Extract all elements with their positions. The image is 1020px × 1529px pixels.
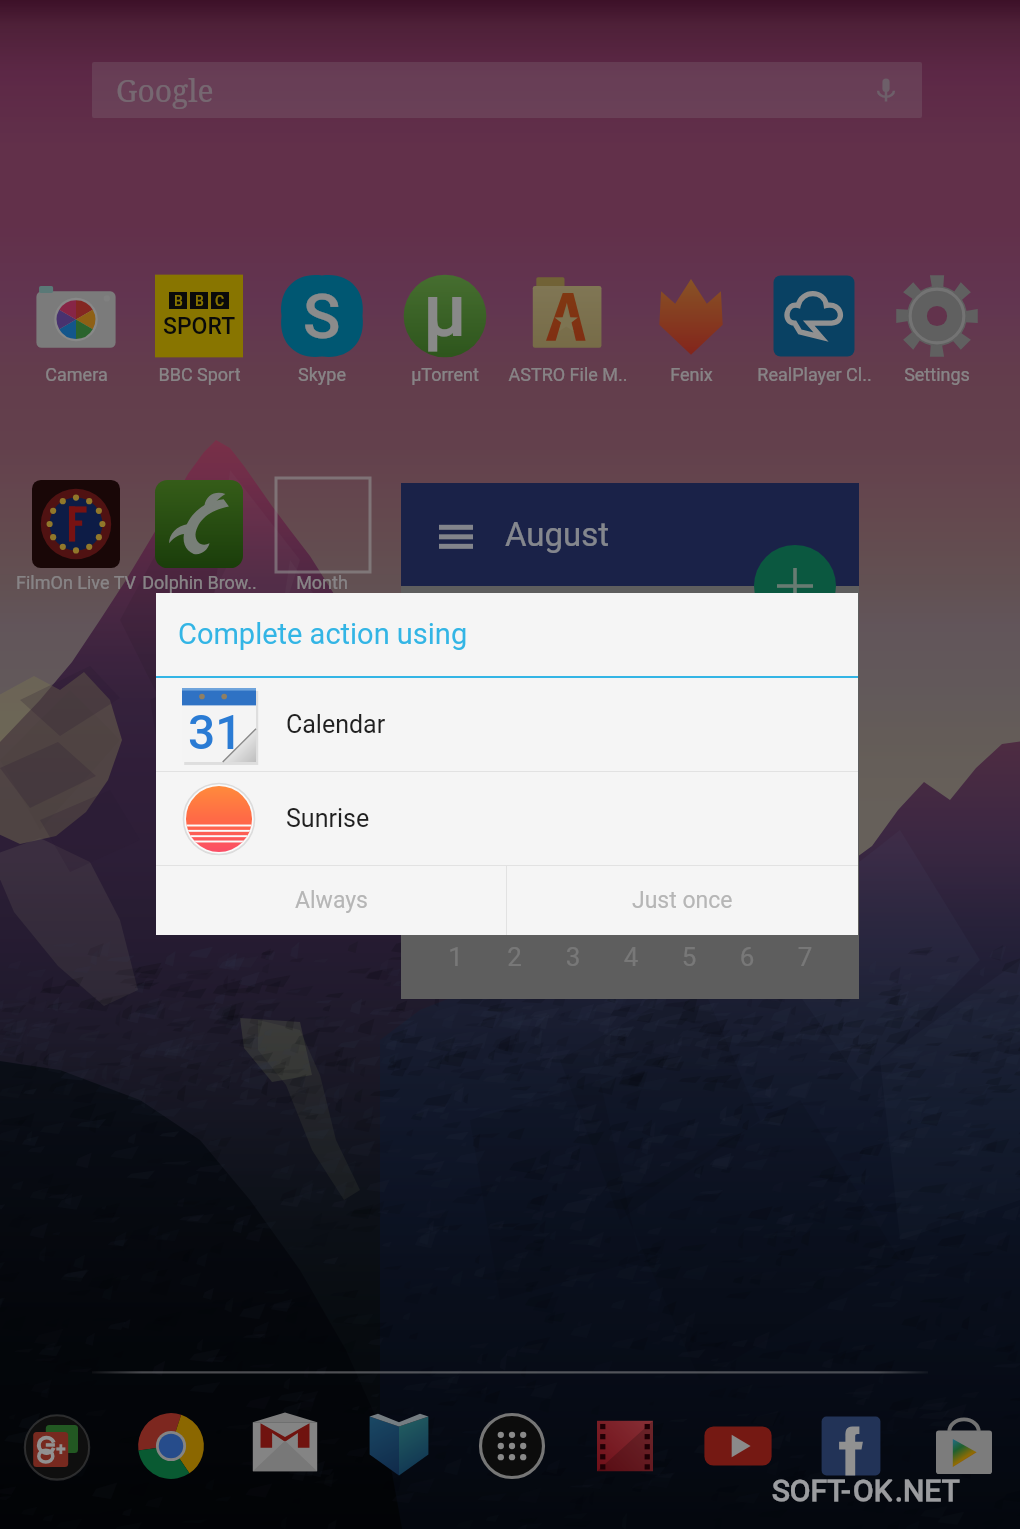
staticText: BBC Sport	[158, 364, 241, 385]
staticText: Skype	[298, 364, 346, 385]
staticText: RealPlayer Cl..	[757, 364, 872, 385]
staticText: 5	[660, 942, 718, 972]
button[interactable]	[4, 474, 150, 596]
staticText: .NET	[895, 1473, 960, 1508]
other: Menu	[439, 518, 473, 552]
staticText: Camera	[45, 364, 108, 385]
staticText: 7	[776, 942, 834, 972]
staticText: Settings	[904, 364, 970, 385]
button[interactable]	[619, 266, 765, 388]
button[interactable]: Play Books	[342, 1398, 455, 1494]
staticText: Google	[116, 70, 214, 111]
staticText: 4	[602, 942, 660, 972]
button[interactable]: YouTube	[681, 1398, 794, 1494]
staticText: 3	[544, 942, 602, 972]
button[interactable]: Add event	[754, 545, 836, 627]
button[interactable]: Just once	[507, 866, 858, 935]
staticText: Fenix	[670, 364, 713, 385]
button[interactable]	[373, 266, 519, 388]
button[interactable]: All apps	[455, 1398, 568, 1494]
button[interactable]: Gmail	[228, 1398, 342, 1494]
staticText: 31	[188, 704, 243, 760]
staticText: µTorrent	[411, 364, 479, 385]
button[interactable]	[496, 266, 642, 388]
button[interactable]: Chrome	[114, 1398, 228, 1494]
staticText: B	[174, 293, 183, 309]
button[interactable]	[250, 266, 396, 388]
button[interactable]	[127, 266, 273, 388]
staticText: 1	[426, 942, 485, 972]
button[interactable]: Sunrise	[156, 772, 858, 865]
button[interactable]	[742, 266, 888, 388]
button[interactable]: Google search	[92, 62, 922, 118]
button[interactable]	[865, 266, 1011, 388]
staticText: August	[505, 515, 610, 554]
button[interactable]: Month widget	[276, 478, 370, 572]
staticText: 6	[718, 942, 776, 972]
staticText: Calendar	[286, 710, 386, 739]
button[interactable]: Facebook	[794, 1398, 907, 1494]
staticText: S	[303, 280, 341, 353]
staticText: C	[215, 293, 225, 309]
staticText: FilmOn Live TV	[16, 572, 136, 593]
staticText: 2	[485, 942, 544, 972]
staticText: Dolphin Brow..	[142, 572, 257, 593]
staticText: SPORT	[163, 313, 236, 340]
button[interactable]	[127, 474, 273, 596]
staticText: Always	[295, 887, 368, 914]
button[interactable]: 31	[156, 678, 858, 771]
staticText: Month	[296, 572, 348, 593]
staticText: B	[195, 293, 204, 309]
button[interactable]: Play Store	[907, 1398, 1020, 1494]
button[interactable]: Always	[156, 866, 506, 935]
button[interactable]: Play Movies	[568, 1398, 681, 1494]
staticText: SOFT-	[772, 1473, 851, 1508]
staticText: µ	[423, 267, 467, 354]
staticText: Complete action using	[178, 617, 468, 651]
button[interactable]	[4, 266, 150, 388]
staticText: Just once	[632, 887, 733, 914]
staticText: Sunrise	[286, 804, 370, 833]
staticText: OK	[853, 1473, 893, 1508]
button[interactable]: Google Plus	[0, 1398, 114, 1494]
staticText: ASTRO File M..	[508, 364, 628, 385]
